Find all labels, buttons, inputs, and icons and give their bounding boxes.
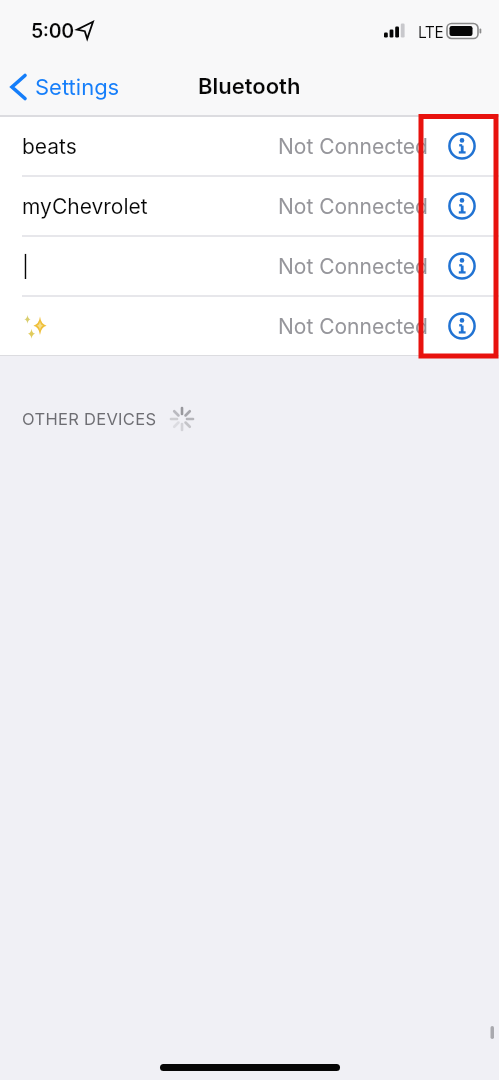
staticText: Not Connected	[278, 194, 428, 219]
button[interactable]: beats	[0, 117, 499, 175]
staticText: Settings	[35, 74, 120, 101]
staticText: |	[22, 254, 29, 279]
button[interactable]	[448, 192, 476, 220]
button[interactable]: Not Connected	[0, 297, 499, 355]
button[interactable]: |	[0, 237, 499, 295]
button[interactable]	[448, 252, 476, 280]
staticText: Not Connected	[278, 314, 428, 339]
button[interactable]	[448, 132, 476, 160]
button[interactable]: Settings	[0, 73, 120, 101]
button[interactable]: myChevrolet	[0, 177, 499, 235]
staticText: Not Connected	[278, 134, 428, 159]
staticText: Not Connected	[278, 254, 428, 279]
staticText: LTE	[418, 23, 444, 42]
staticText: OTHER DEVICES	[22, 409, 157, 429]
staticText: Bluetooth	[198, 73, 301, 100]
staticText: 5:00	[31, 19, 74, 43]
staticText: myChevrolet	[22, 194, 148, 219]
button[interactable]	[448, 312, 476, 340]
staticText: beats	[22, 134, 77, 159]
